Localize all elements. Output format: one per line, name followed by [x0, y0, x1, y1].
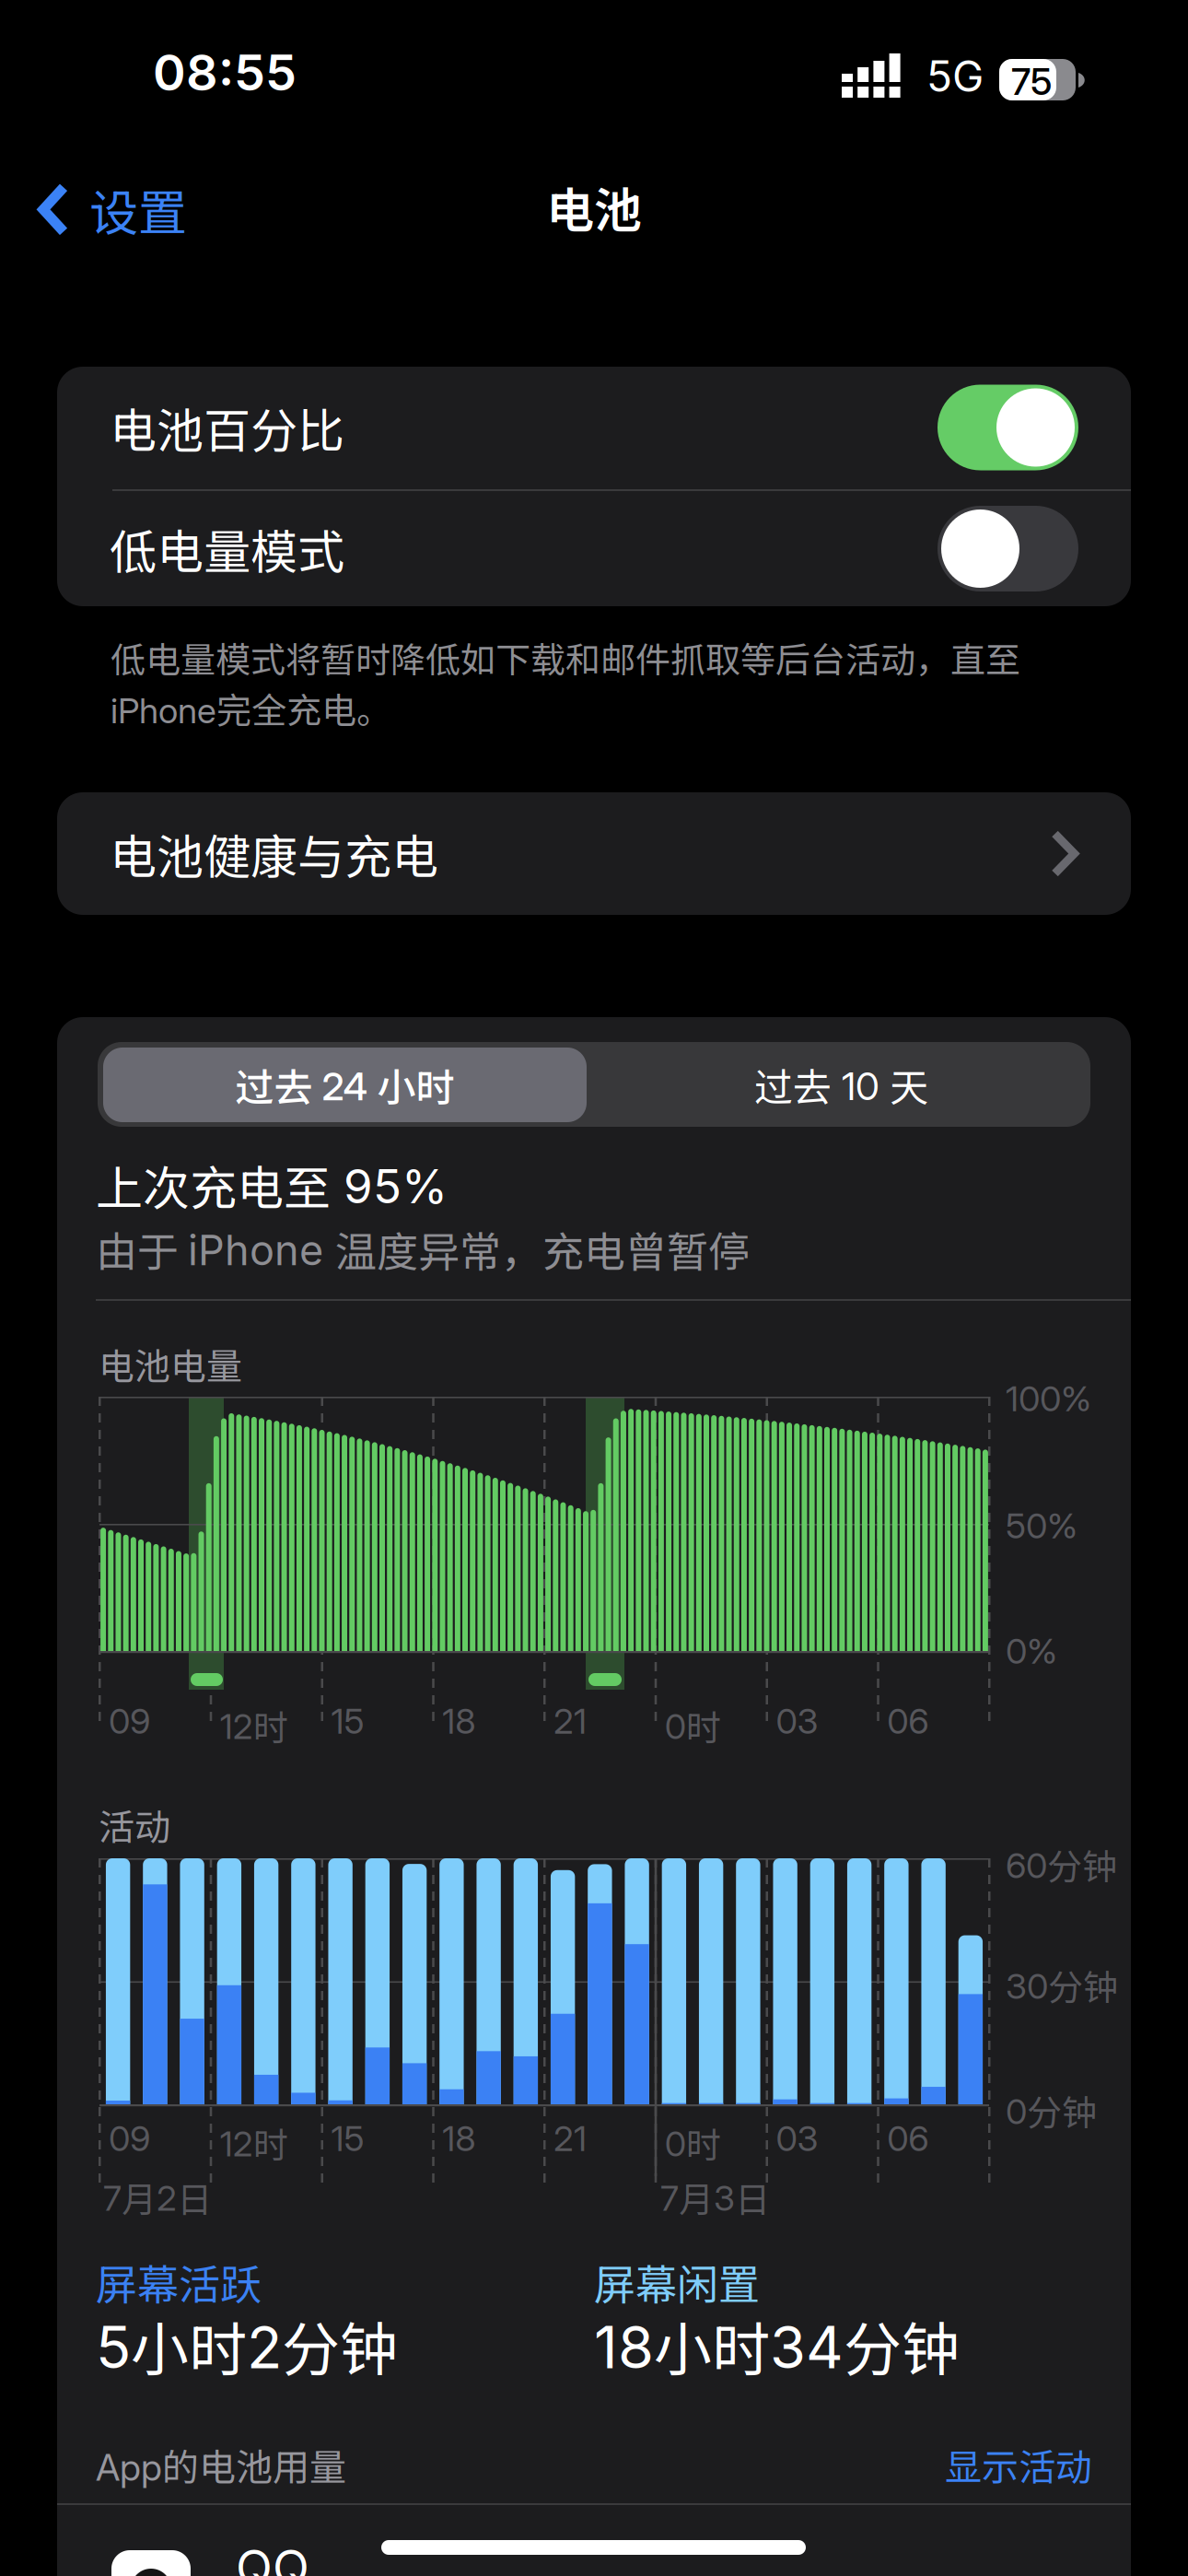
staticText: 5小时2分钟 — [96, 2303, 398, 2387]
staticText: 09 — [109, 1700, 150, 1742]
staticText: 15 — [331, 2117, 364, 2160]
staticText: 5G — [926, 51, 984, 102]
staticText: 低电量模式 — [110, 515, 344, 583]
staticText: 12时 — [220, 2117, 288, 2168]
staticText: 电池百分比 — [110, 393, 344, 461]
staticText: 15 — [331, 1700, 364, 1742]
button[interactable]: 电池百分比 — [57, 367, 1131, 488]
staticText: 18 — [442, 1700, 475, 1742]
staticText: 0分钟 — [1006, 2085, 1097, 2136]
staticText: 显示活动 — [945, 2438, 1092, 2491]
staticText: 03 — [776, 1700, 818, 1742]
staticText: 75 — [1011, 59, 1052, 104]
staticText: QQ — [236, 2538, 309, 2576]
staticText: 过去 24 小时 — [235, 1057, 454, 1113]
staticText: 06 — [887, 1700, 928, 1742]
staticText: 0% — [1006, 1630, 1057, 1672]
button[interactable]: 设置 — [0, 159, 211, 260]
staticText: 21 — [553, 2117, 587, 2160]
staticText: 屏幕闲置 — [594, 2252, 760, 2312]
staticText: 12时 — [220, 1700, 288, 1751]
staticText: 上次充电至 95% — [96, 1151, 448, 1219]
staticText: 60分钟 — [1006, 1839, 1117, 1890]
button[interactable]: 电池健康与充电 — [57, 792, 1131, 915]
button[interactable]: 显示活动 — [945, 2438, 1092, 2491]
staticText: 过去 10 天 — [754, 1057, 928, 1113]
staticText: 18小时34分钟 — [594, 2303, 960, 2387]
staticText: 09 — [109, 2117, 150, 2160]
staticText: 50% — [1006, 1505, 1077, 1547]
staticText: 0时 — [665, 1700, 721, 1751]
staticText: 18 — [442, 2117, 475, 2160]
staticText: 屏幕活跃 — [96, 2252, 262, 2312]
button[interactable]: 过去 10 天 — [598, 1048, 1085, 1122]
staticText: 低电量模式将暂时降低如下载和邮件抓取等后台活动，直至 iPhone完全充电。 — [111, 632, 1020, 733]
staticText: 0时 — [665, 2117, 721, 2168]
staticText: App的电池用量 — [96, 2438, 346, 2491]
staticText: 7月3日 — [660, 2172, 770, 2222]
button[interactable]: 低电量模式 — [57, 491, 1131, 606]
staticText: 由于 iPhone 温度异常，充电曾暂停 — [96, 1219, 750, 1279]
staticText: 电池健康与充电 — [110, 820, 438, 888]
staticText: 30分钟 — [1006, 1960, 1118, 2010]
staticText: 电池电量 — [99, 1338, 242, 1390]
staticText: 06 — [887, 2117, 928, 2160]
staticText: 设置 — [89, 174, 187, 245]
staticText: 100% — [1006, 1377, 1091, 1420]
staticText: 活动 — [99, 1798, 170, 1850]
staticText: 03 — [776, 2117, 818, 2160]
staticText: 电池 — [546, 172, 642, 242]
staticText: 7月2日 — [103, 2172, 212, 2222]
button[interactable]: 过去 24 小时 — [103, 1048, 587, 1122]
staticText: 21 — [553, 1700, 587, 1742]
staticText: 08:55 — [153, 42, 297, 103]
